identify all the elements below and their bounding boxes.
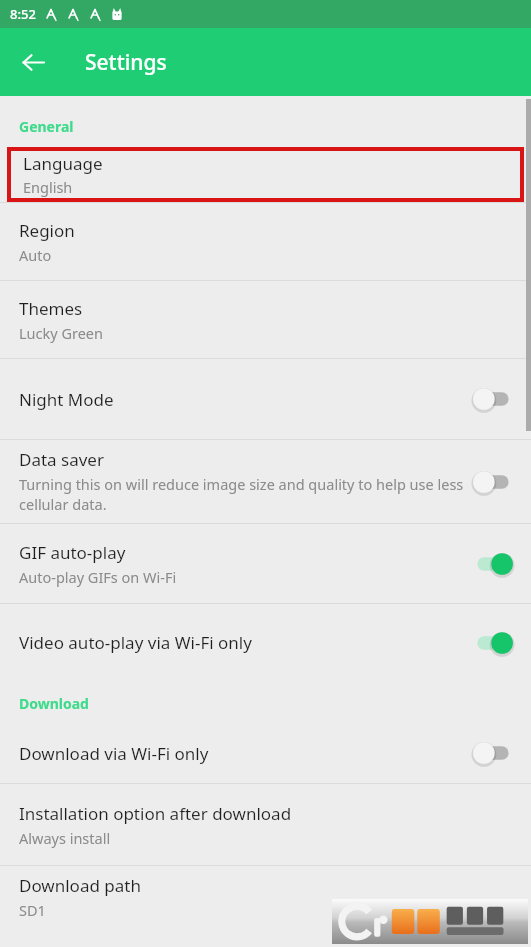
staticText: Video auto-play via Wi-Fi only — [19, 631, 252, 654]
button[interactable]: Data saver — [0, 440, 531, 523]
staticText: Region — [19, 219, 75, 242]
staticText: Night Mode — [19, 388, 114, 411]
staticText: Download — [19, 694, 89, 713]
button[interactable]: GIF auto-play — [0, 524, 531, 603]
staticText: Download via Wi-Fi only — [19, 742, 209, 765]
staticText: Auto-play GIFs on Wi-Fi — [19, 567, 177, 587]
button[interactable]: Night Mode switch — [467, 381, 519, 417]
staticText: Installation option after download — [19, 802, 292, 825]
staticText: English — [23, 177, 73, 197]
button[interactable]: Video auto-play via Wi-Fi only switch — [467, 625, 519, 661]
staticText: Download path — [19, 874, 141, 897]
button[interactable]: Back — [11, 40, 55, 84]
staticText: Turning this on will reduce image size a… — [19, 474, 467, 515]
button[interactable]: Language — [11, 151, 520, 198]
staticText: GIF auto-play — [19, 541, 126, 564]
button[interactable]: Night Mode — [0, 359, 531, 439]
staticText: 8:52 — [10, 5, 36, 23]
button[interactable]: Video auto-play via Wi-Fi only — [0, 604, 531, 681]
button[interactable]: Installation option after download — [0, 784, 531, 865]
staticText: Lucky Green — [19, 323, 103, 343]
staticText: Themes — [19, 297, 83, 320]
staticText: Language — [23, 152, 103, 175]
staticText: Auto — [19, 245, 52, 265]
staticText: Settings — [85, 48, 167, 77]
staticText: Data saver — [19, 448, 104, 471]
button[interactable]: Themes — [0, 281, 531, 358]
button[interactable]: Data saver switch — [467, 464, 519, 500]
staticText: SD1 — [19, 900, 46, 920]
staticText: General — [19, 117, 74, 136]
button[interactable]: Download path — [0, 866, 531, 928]
button[interactable]: GIF auto-play switch — [467, 546, 519, 582]
button[interactable]: Download via Wi-Fi only switch — [467, 735, 519, 771]
button[interactable]: Download via Wi-Fi only — [0, 723, 531, 783]
staticText: Always install — [19, 828, 111, 848]
button[interactable]: Region — [0, 203, 531, 280]
